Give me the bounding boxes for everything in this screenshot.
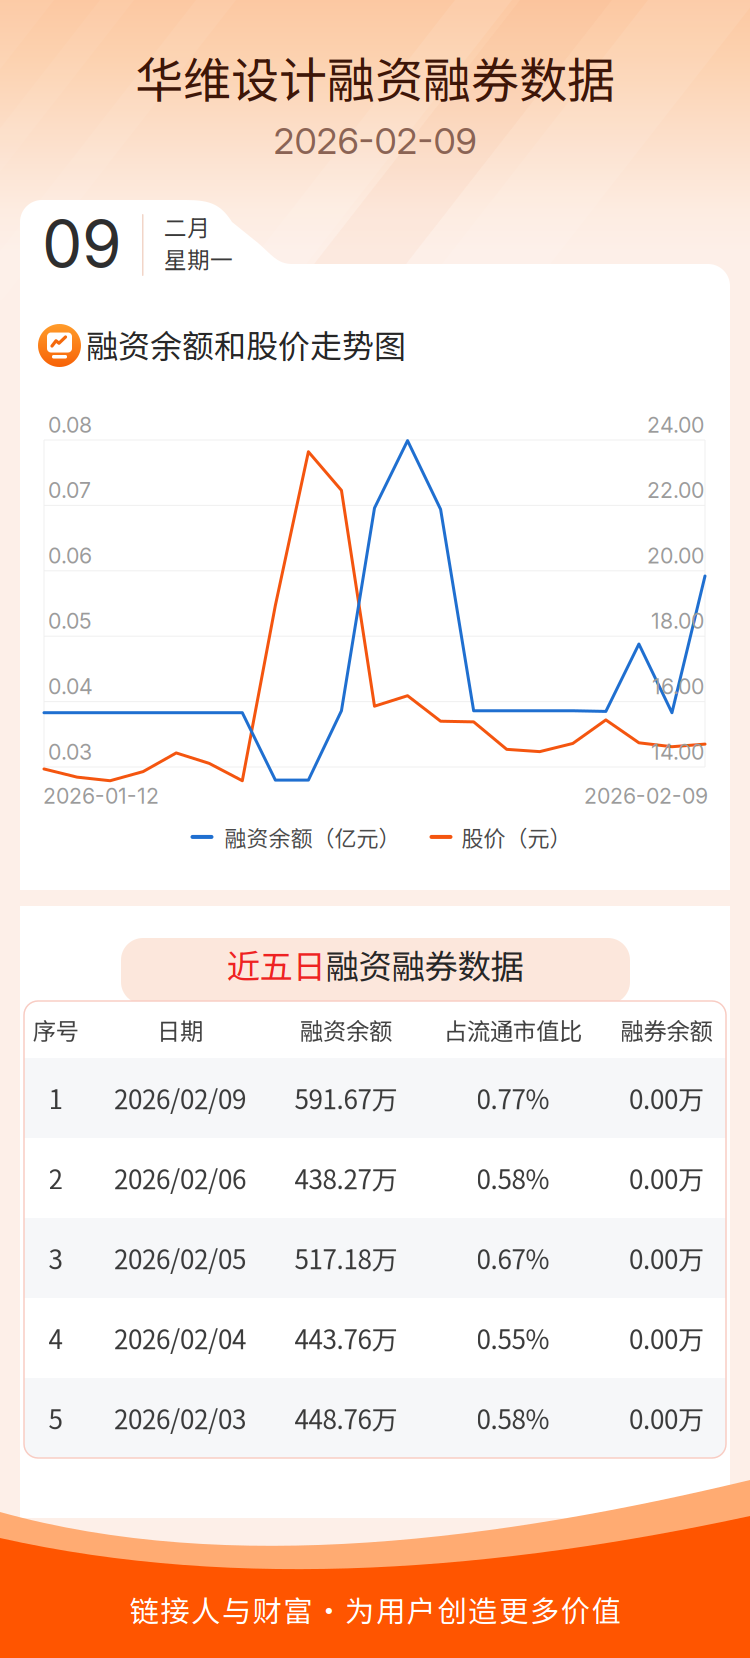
staticText: 20.00 — [647, 543, 704, 569]
staticText: 融资余额和股价走势图 — [86, 321, 406, 367]
staticText: 0.00万 — [629, 1399, 704, 1437]
staticText: 2026-02-09 — [273, 119, 476, 163]
staticText: 0.00万 — [629, 1239, 704, 1277]
staticText: 融资融券数据 — [325, 940, 523, 988]
staticText: 448.76万 — [294, 1399, 397, 1437]
staticText: 591.67万 — [294, 1079, 397, 1117]
staticText: 16.00 — [652, 674, 704, 699]
staticText: 2026/02/04 — [114, 1319, 246, 1357]
staticText: 14.00 — [651, 739, 704, 765]
staticText: 3 — [48, 1239, 62, 1277]
staticText: 0.58% — [476, 1159, 549, 1197]
staticText: 2026-02-09 — [584, 783, 708, 809]
staticText: 股价（元） — [461, 821, 571, 853]
staticText: 占流通市值比 — [444, 1013, 582, 1046]
staticText: 0.08 — [48, 412, 92, 438]
staticText: 0.07 — [48, 477, 91, 503]
staticText: 2026/02/05 — [114, 1239, 246, 1277]
staticText: 2026-01-12 — [43, 783, 159, 809]
staticText: 融资余额（亿元） — [224, 821, 400, 853]
staticText: 0.55% — [476, 1319, 549, 1357]
staticText: 0.00万 — [629, 1159, 704, 1197]
staticText: 2026/02/03 — [114, 1399, 246, 1437]
staticText: 融券余额 — [620, 1013, 712, 1046]
staticText: 0.00万 — [629, 1079, 704, 1117]
staticText: 序号 — [32, 1013, 78, 1046]
staticText: 链接人与财富·为用户创造更多价值 — [129, 1588, 620, 1630]
staticText: 2 — [48, 1159, 62, 1197]
staticText: 近五日 — [226, 940, 325, 988]
staticText: 日期 — [157, 1013, 203, 1046]
staticText: 华维设计融资融券数据 — [135, 42, 615, 111]
staticText: 二月 — [164, 210, 210, 243]
staticText: 融资余额 — [300, 1013, 392, 1046]
staticText: 2026/02/06 — [114, 1159, 246, 1197]
staticText: 2026/02/09 — [114, 1079, 246, 1117]
staticText: 22.00 — [647, 477, 704, 503]
staticText: 0.77% — [476, 1079, 549, 1117]
staticText: 1 — [48, 1079, 62, 1117]
staticText: 517.18万 — [294, 1239, 397, 1277]
staticText: 0.67% — [476, 1239, 549, 1277]
staticText: 0.03 — [48, 739, 92, 765]
staticText: 18.00 — [651, 608, 704, 634]
staticText: 4 — [48, 1319, 62, 1357]
staticText: 24.00 — [647, 412, 704, 438]
staticText: 星期一 — [164, 242, 233, 275]
staticText: 0.04 — [48, 674, 93, 699]
staticText: 0.06 — [48, 543, 92, 569]
staticText: 438.27万 — [294, 1159, 397, 1197]
staticText: 5 — [48, 1399, 62, 1437]
staticText: 0.05 — [48, 608, 92, 634]
staticText: 0.00万 — [629, 1319, 704, 1357]
staticText: 0.58% — [476, 1399, 549, 1437]
staticText: 443.76万 — [294, 1319, 397, 1357]
staticText: 09 — [42, 205, 122, 282]
